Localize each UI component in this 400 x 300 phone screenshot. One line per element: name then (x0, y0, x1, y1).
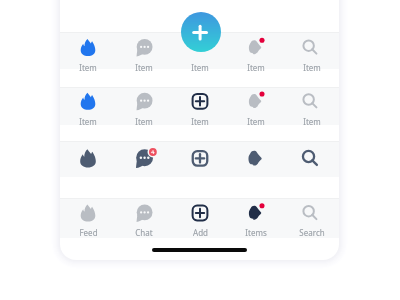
button[interactable]: Feed (60, 142, 116, 177)
button[interactable]: Search (284, 199, 339, 238)
button[interactable]: Add (172, 33, 228, 69)
staticText: Item (191, 62, 209, 73)
button[interactable]: Add (181, 12, 221, 52)
button[interactable]: Items (228, 142, 284, 177)
button[interactable]: Search (284, 142, 339, 177)
button[interactable]: Feed (60, 33, 116, 69)
staticText: Item (247, 116, 265, 127)
button[interactable]: Chat (116, 33, 172, 69)
staticText: Search (299, 227, 325, 238)
staticText: Item (135, 116, 153, 127)
staticText: Item (79, 62, 97, 73)
button[interactable]: Add (172, 88, 228, 125)
button[interactable]: Add (172, 199, 228, 238)
staticText: Item (135, 62, 153, 73)
button[interactable]: Feed (60, 88, 116, 125)
button[interactable]: Search (284, 33, 339, 69)
staticText: Item (191, 116, 209, 127)
button[interactable]: Items (228, 199, 284, 238)
staticText: Items (245, 227, 267, 238)
button[interactable]: Add (172, 142, 228, 177)
staticText: Item (303, 116, 321, 127)
button[interactable]: Items (228, 88, 284, 125)
staticText: Item (303, 62, 321, 73)
staticText: Feed (79, 227, 98, 238)
staticText: Chat (135, 227, 153, 238)
button[interactable]: Chat (116, 142, 172, 177)
button[interactable]: Chat (116, 88, 172, 125)
staticText: Item (247, 62, 265, 73)
button[interactable]: Chat (116, 199, 172, 238)
button[interactable]: Feed (60, 199, 116, 238)
staticText: Add (193, 227, 208, 238)
button[interactable]: Search (284, 88, 339, 125)
button[interactable]: Items (228, 33, 284, 69)
staticText: Item (79, 116, 97, 127)
